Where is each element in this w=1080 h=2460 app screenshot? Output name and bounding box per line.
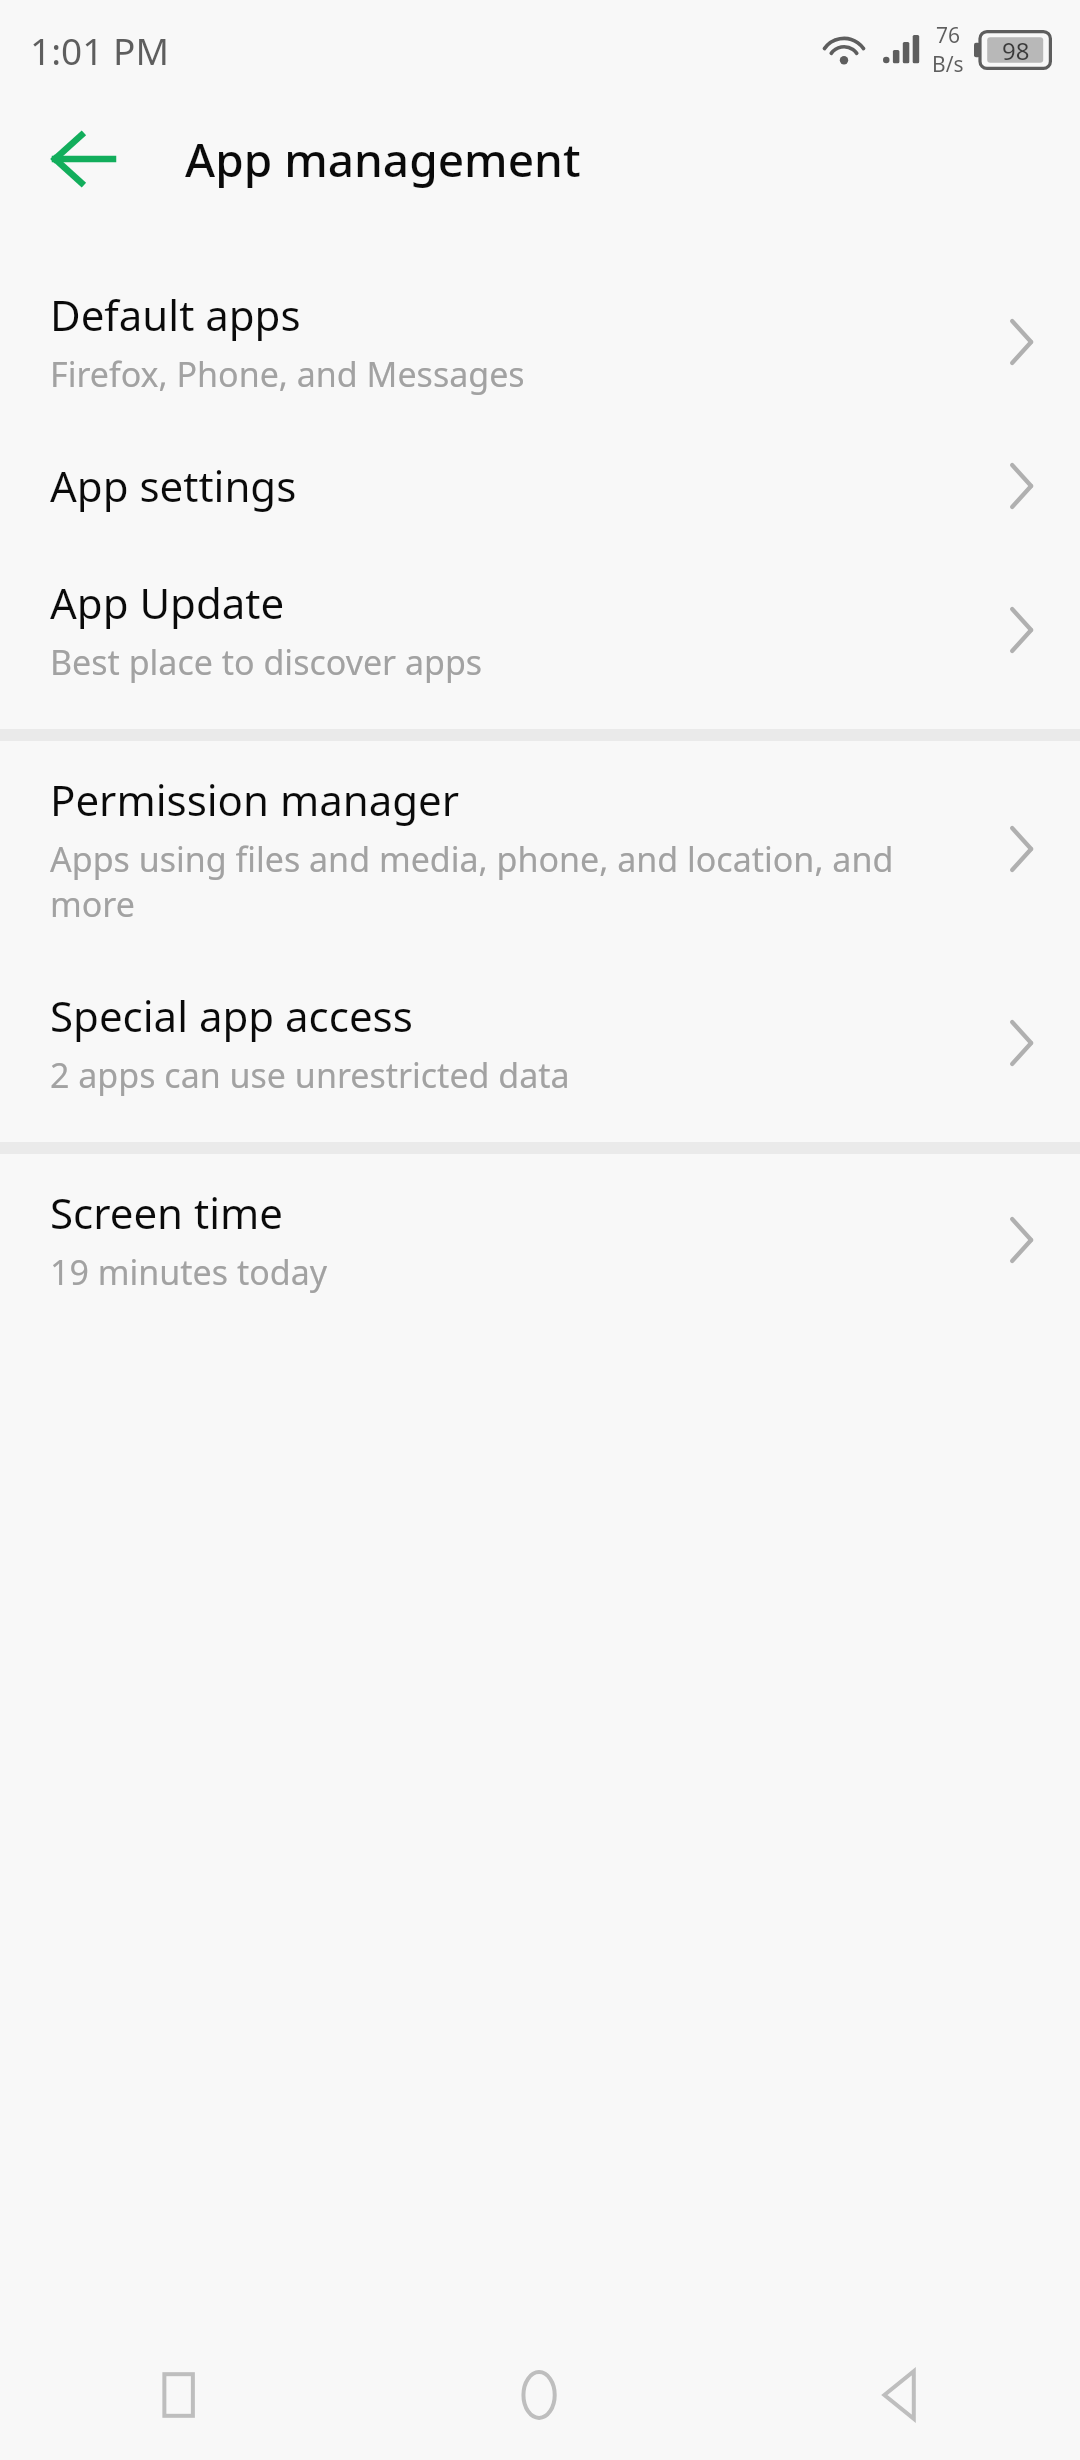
staticText: Permission manager — [50, 771, 460, 828]
staticText: Firefox, Phone, and Messages — [50, 351, 525, 397]
button[interactable]: Home — [360, 2330, 720, 2460]
staticText: App management — [185, 128, 581, 191]
button[interactable]: Back — [720, 2330, 1080, 2460]
staticText: 2 apps can use unrestricted data — [50, 1052, 570, 1098]
staticText: App Update — [50, 574, 285, 631]
button[interactable]: Back — [22, 100, 146, 218]
staticText: Apps using files and media, phone, and l… — [50, 836, 966, 927]
staticText: 76 — [936, 21, 961, 50]
staticText: Best place to discover apps — [50, 639, 483, 685]
button[interactable]: App Update — [0, 544, 1080, 715]
staticText: 98 — [1002, 34, 1030, 67]
staticText: B/s — [932, 50, 964, 79]
staticText: Special app access — [50, 987, 413, 1044]
button[interactable]: Screen time — [0, 1154, 1080, 1325]
staticText: Screen time — [50, 1184, 283, 1241]
staticText: 1:01 PM — [30, 25, 169, 75]
button[interactable]: Recents — [0, 2330, 360, 2460]
button[interactable]: App settings — [0, 427, 1080, 544]
button[interactable]: Special app access — [0, 957, 1080, 1128]
staticText: 19 minutes today — [50, 1249, 328, 1295]
staticText: Default apps — [50, 286, 301, 343]
button[interactable]: Default apps — [0, 256, 1080, 427]
staticText: App settings — [50, 457, 297, 514]
button[interactable]: Permission manager — [0, 741, 1080, 957]
